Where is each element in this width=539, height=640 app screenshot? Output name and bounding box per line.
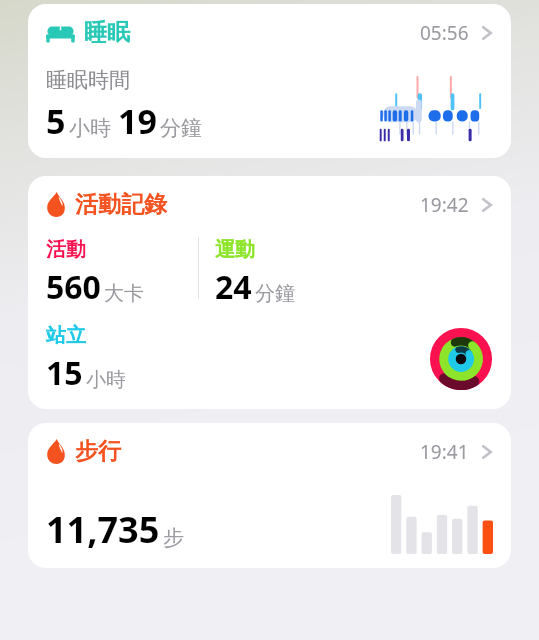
staticText: 大卡	[104, 281, 144, 306]
staticText: 560	[46, 265, 101, 309]
staticText: 11,735	[46, 505, 160, 554]
staticText: 睡眠	[84, 18, 130, 47]
staticText: 活動	[46, 237, 86, 262]
staticText: 19:42	[420, 192, 469, 218]
staticText: 小時	[69, 115, 111, 141]
button[interactable]: 活動記錄	[28, 176, 511, 409]
other: Open 活動記錄 details	[480, 194, 493, 216]
staticText: 19:41	[420, 439, 469, 465]
staticText: 站立	[46, 323, 86, 348]
button[interactable]: 睡眠	[28, 4, 511, 158]
staticText: 活動記錄	[75, 190, 167, 219]
staticText: 分鐘	[255, 281, 295, 306]
staticText: 05:56	[420, 20, 469, 46]
button[interactable]: 步行	[28, 423, 511, 568]
staticText: 15	[46, 351, 83, 395]
staticText: 5	[46, 98, 66, 144]
staticText: 24	[215, 265, 252, 309]
other: Open 睡眠 details	[480, 22, 493, 44]
staticText: 19	[118, 98, 157, 144]
staticText: 小時	[86, 367, 126, 392]
staticText: 運動	[215, 237, 255, 262]
staticText: 步	[163, 525, 184, 551]
staticText: 睡眠時間	[46, 67, 130, 93]
other: Open 步行 details	[480, 441, 493, 463]
staticText: 分鐘	[160, 115, 202, 141]
staticText: 步行	[75, 437, 121, 466]
